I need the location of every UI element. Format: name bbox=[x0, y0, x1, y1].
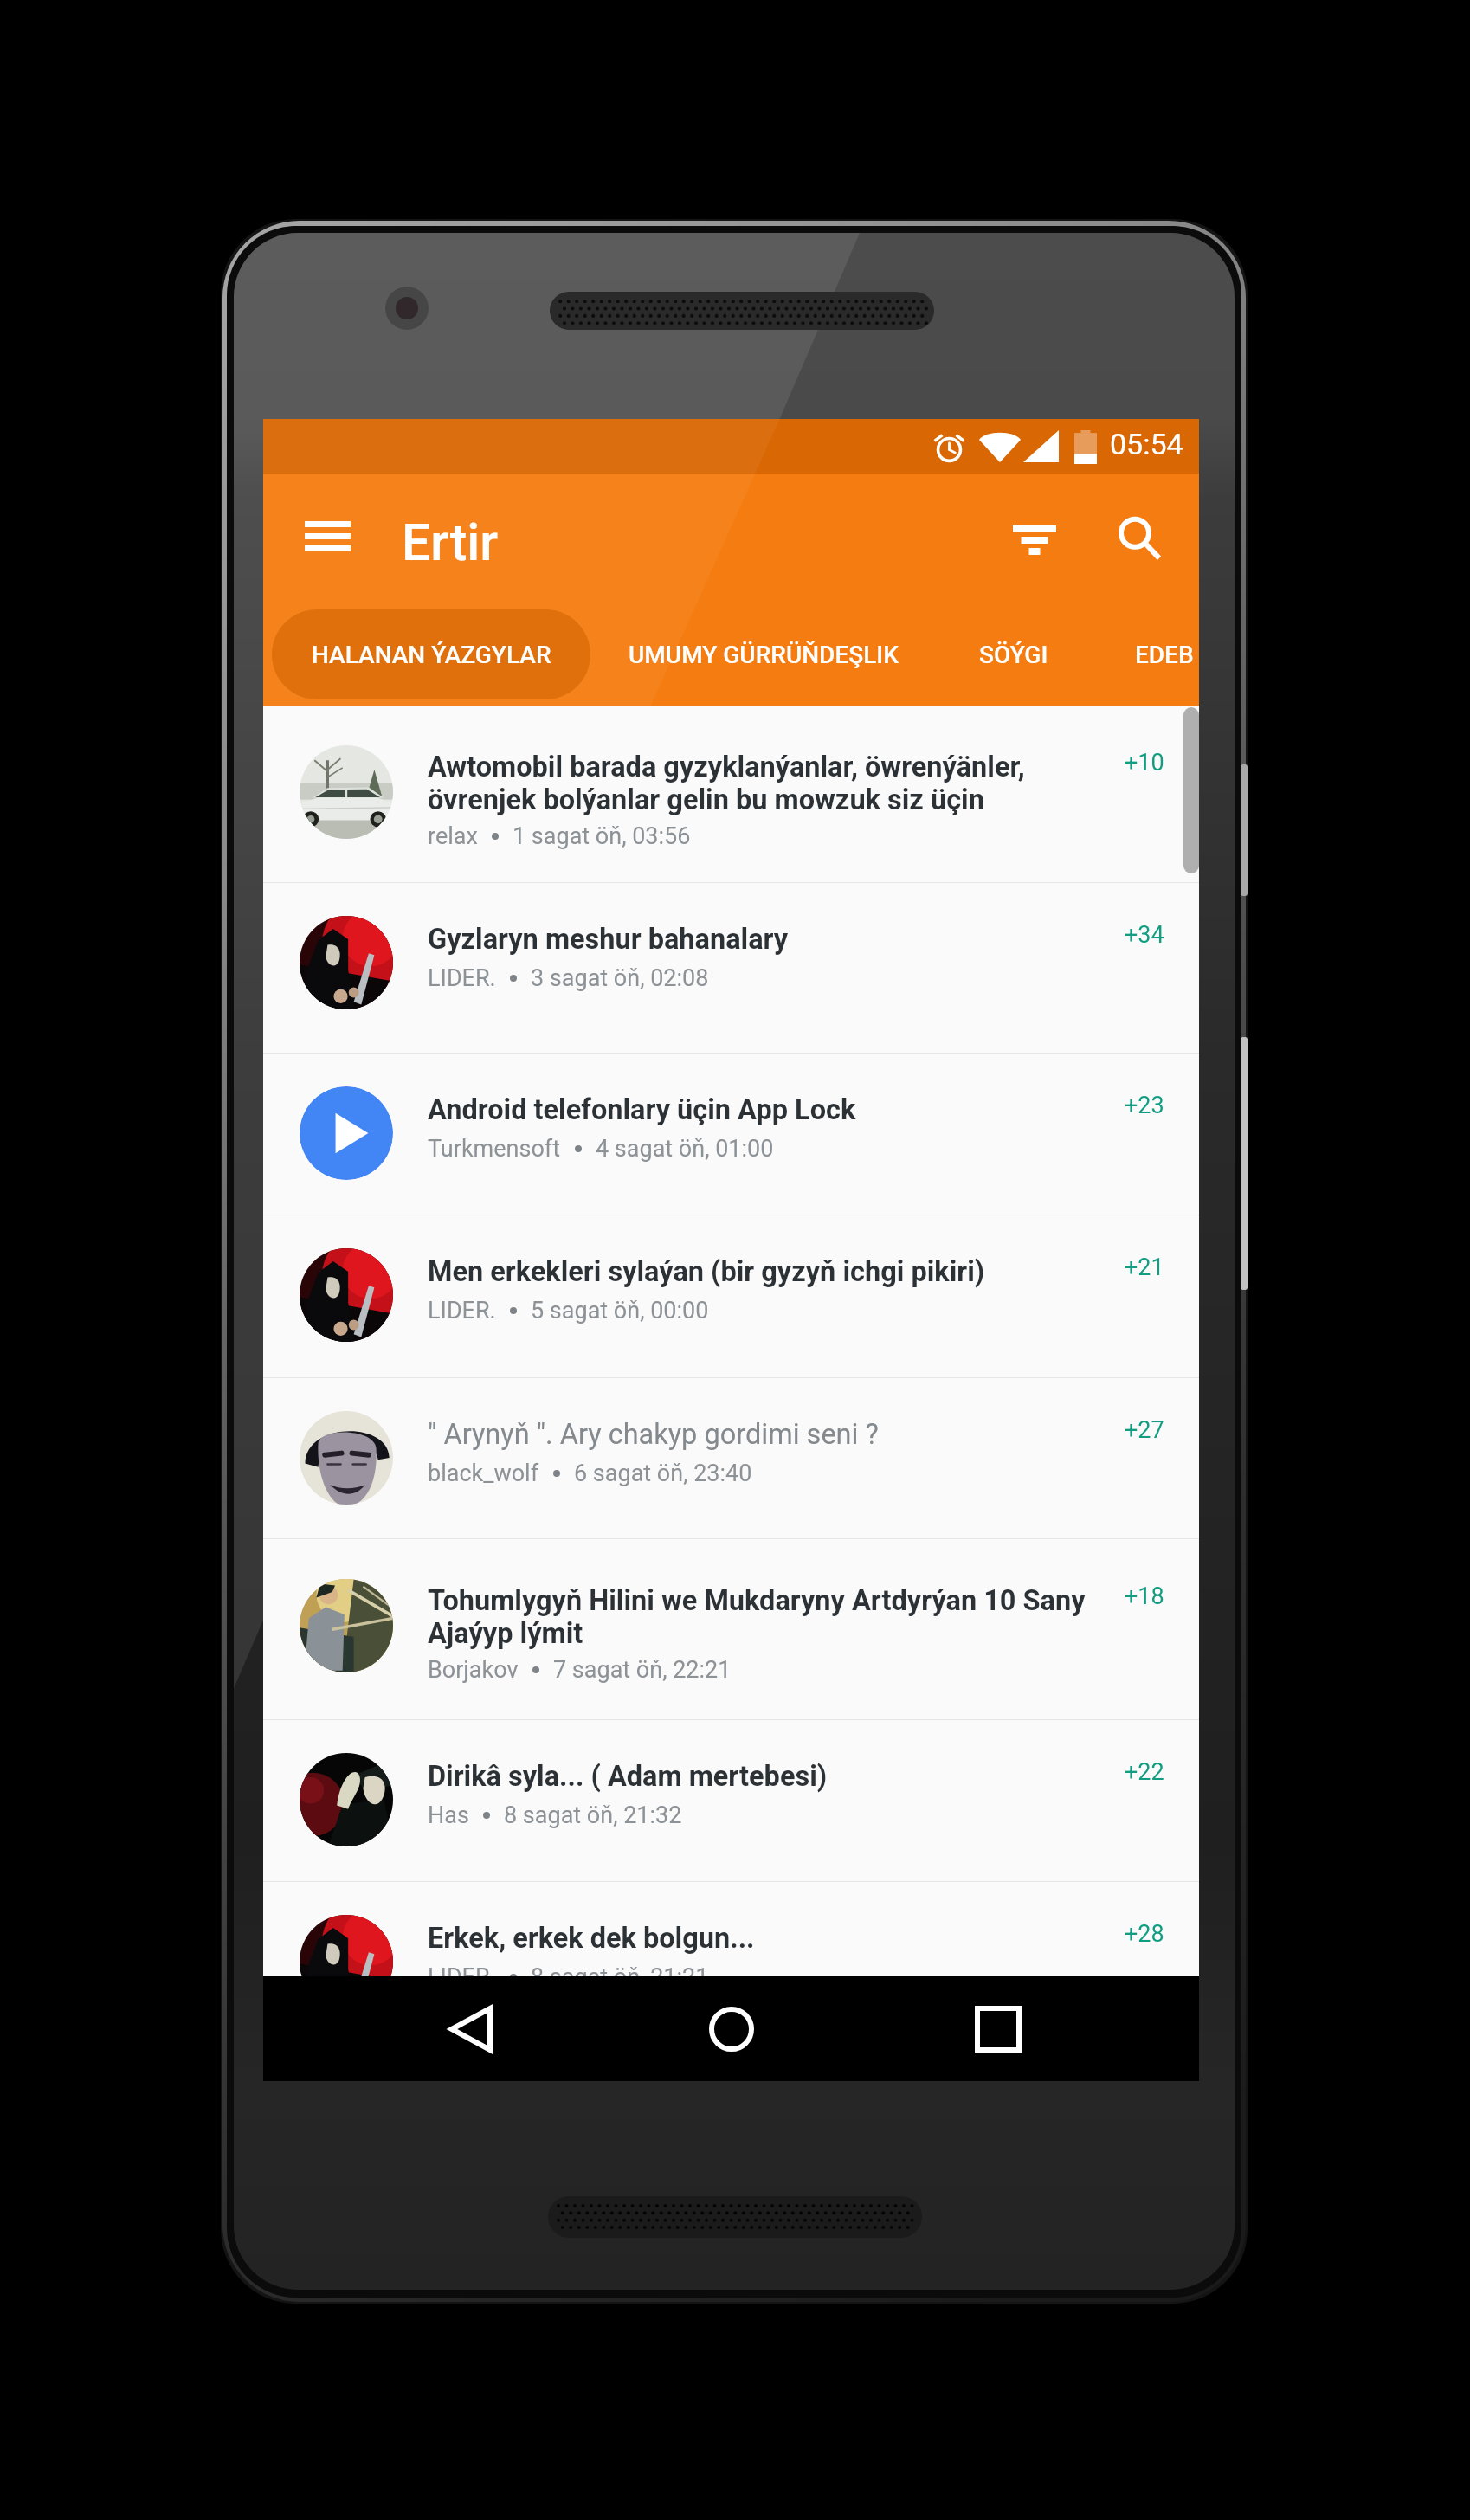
staticText: +27 bbox=[1125, 1416, 1164, 1444]
staticText: +21 bbox=[1125, 1254, 1164, 1281]
staticText: 8 sagat öň, 21:21 bbox=[531, 1963, 709, 1991]
staticText: LIDER. bbox=[428, 1297, 496, 1324]
staticText: Android telefonlary üçin App Lock bbox=[428, 1093, 856, 1126]
staticText: +34 bbox=[1125, 921, 1164, 949]
staticText: SÖÝGI bbox=[979, 641, 1048, 669]
staticText: 7 sagat öň, 22:21 bbox=[553, 1656, 732, 1684]
staticText: 3 sagat öň, 02:08 bbox=[531, 964, 709, 992]
button[interactable]: SÖÝGI bbox=[976, 609, 1052, 699]
staticText: +23 bbox=[1125, 1092, 1164, 1119]
button[interactable]: EDEB bbox=[1132, 609, 1197, 699]
staticText: 1 sagat öň, 03:56 bbox=[513, 822, 691, 850]
staticText: Men erkekleri sylaýan (bir gyzyň ichgi p… bbox=[428, 1255, 985, 1288]
button[interactable]: Android telefonlary üçin App Lock bbox=[263, 1054, 1199, 1215]
button[interactable]: Filter bbox=[986, 492, 1083, 589]
button[interactable]: Open navigation menu bbox=[279, 487, 376, 584]
button[interactable]: HALANAN ÝAZGYLAR bbox=[272, 609, 590, 699]
staticText: Awtomobil barada gyzyklanýanlar, öwrenýä… bbox=[428, 751, 1025, 816]
staticText: relax bbox=[428, 822, 478, 850]
button[interactable]: Dirikâ syla... ( Adam mertebesi) bbox=[263, 1720, 1199, 1881]
staticText: 05:54 bbox=[1110, 427, 1183, 461]
staticText: LIDER. bbox=[428, 1963, 496, 1991]
staticText: UMUMY GÜRRÜŇDEŞLIK bbox=[629, 641, 899, 669]
staticText: +28 bbox=[1125, 1920, 1164, 1948]
button[interactable]: Gyzlaryn meshur bahanalary bbox=[263, 883, 1199, 1053]
button[interactable]: " Arynyň ". Ary chakyp gordimi seni ? bbox=[263, 1378, 1199, 1538]
staticText: EDEB bbox=[1135, 641, 1194, 669]
staticText: +22 bbox=[1125, 1758, 1164, 1786]
staticText: Tohumlygyň Hilini we Mukdaryny Artdyrýan… bbox=[428, 1584, 1086, 1650]
staticText: Ertir bbox=[402, 512, 499, 572]
staticText: Erkek, erkek dek bolgun... bbox=[428, 1922, 755, 1955]
staticText: 6 sagat öň, 23:40 bbox=[574, 1460, 752, 1487]
button[interactable]: Recent apps bbox=[929, 1976, 1067, 2081]
staticText: Gyzlaryn meshur bahanalary bbox=[428, 923, 789, 956]
staticText: Has bbox=[428, 1801, 469, 1829]
button[interactable]: Tohumlygyň Hilini we Mukdaryny Artdyrýan… bbox=[263, 1539, 1199, 1719]
staticText: 8 sagat öň, 21:32 bbox=[504, 1801, 682, 1829]
button[interactable]: Search bbox=[1091, 490, 1188, 587]
staticText: black_wolf bbox=[428, 1460, 539, 1487]
button[interactable]: Back bbox=[401, 1976, 539, 2081]
staticText: Dirikâ syla... ( Adam mertebesi) bbox=[428, 1760, 828, 1793]
staticText: +10 bbox=[1125, 749, 1164, 777]
staticText: Borjakov bbox=[428, 1656, 519, 1684]
button[interactable]: Home bbox=[662, 1976, 801, 2081]
staticText: LIDER. bbox=[428, 964, 496, 992]
staticText: Turkmensoft bbox=[428, 1135, 561, 1163]
staticText: " Arynyň ". Ary chakyp gordimi seni ? bbox=[428, 1418, 879, 1451]
staticText: +18 bbox=[1125, 1582, 1164, 1610]
button[interactable]: Awtomobil barada gyzyklanýanlar, öwrenýä… bbox=[263, 706, 1199, 882]
button[interactable]: Men erkekleri sylaýan (bir gyzyň ichgi p… bbox=[263, 1215, 1199, 1377]
staticText: 5 sagat öň, 00:00 bbox=[531, 1297, 709, 1324]
button[interactable]: Erkek, erkek dek bolgun... bbox=[263, 1882, 1199, 2055]
staticText: HALANAN ÝAZGYLAR bbox=[312, 641, 551, 669]
button[interactable]: UMUMY GÜRRÜŇDEŞLIK bbox=[625, 609, 902, 699]
staticText: 4 sagat öň, 01:00 bbox=[596, 1135, 774, 1163]
